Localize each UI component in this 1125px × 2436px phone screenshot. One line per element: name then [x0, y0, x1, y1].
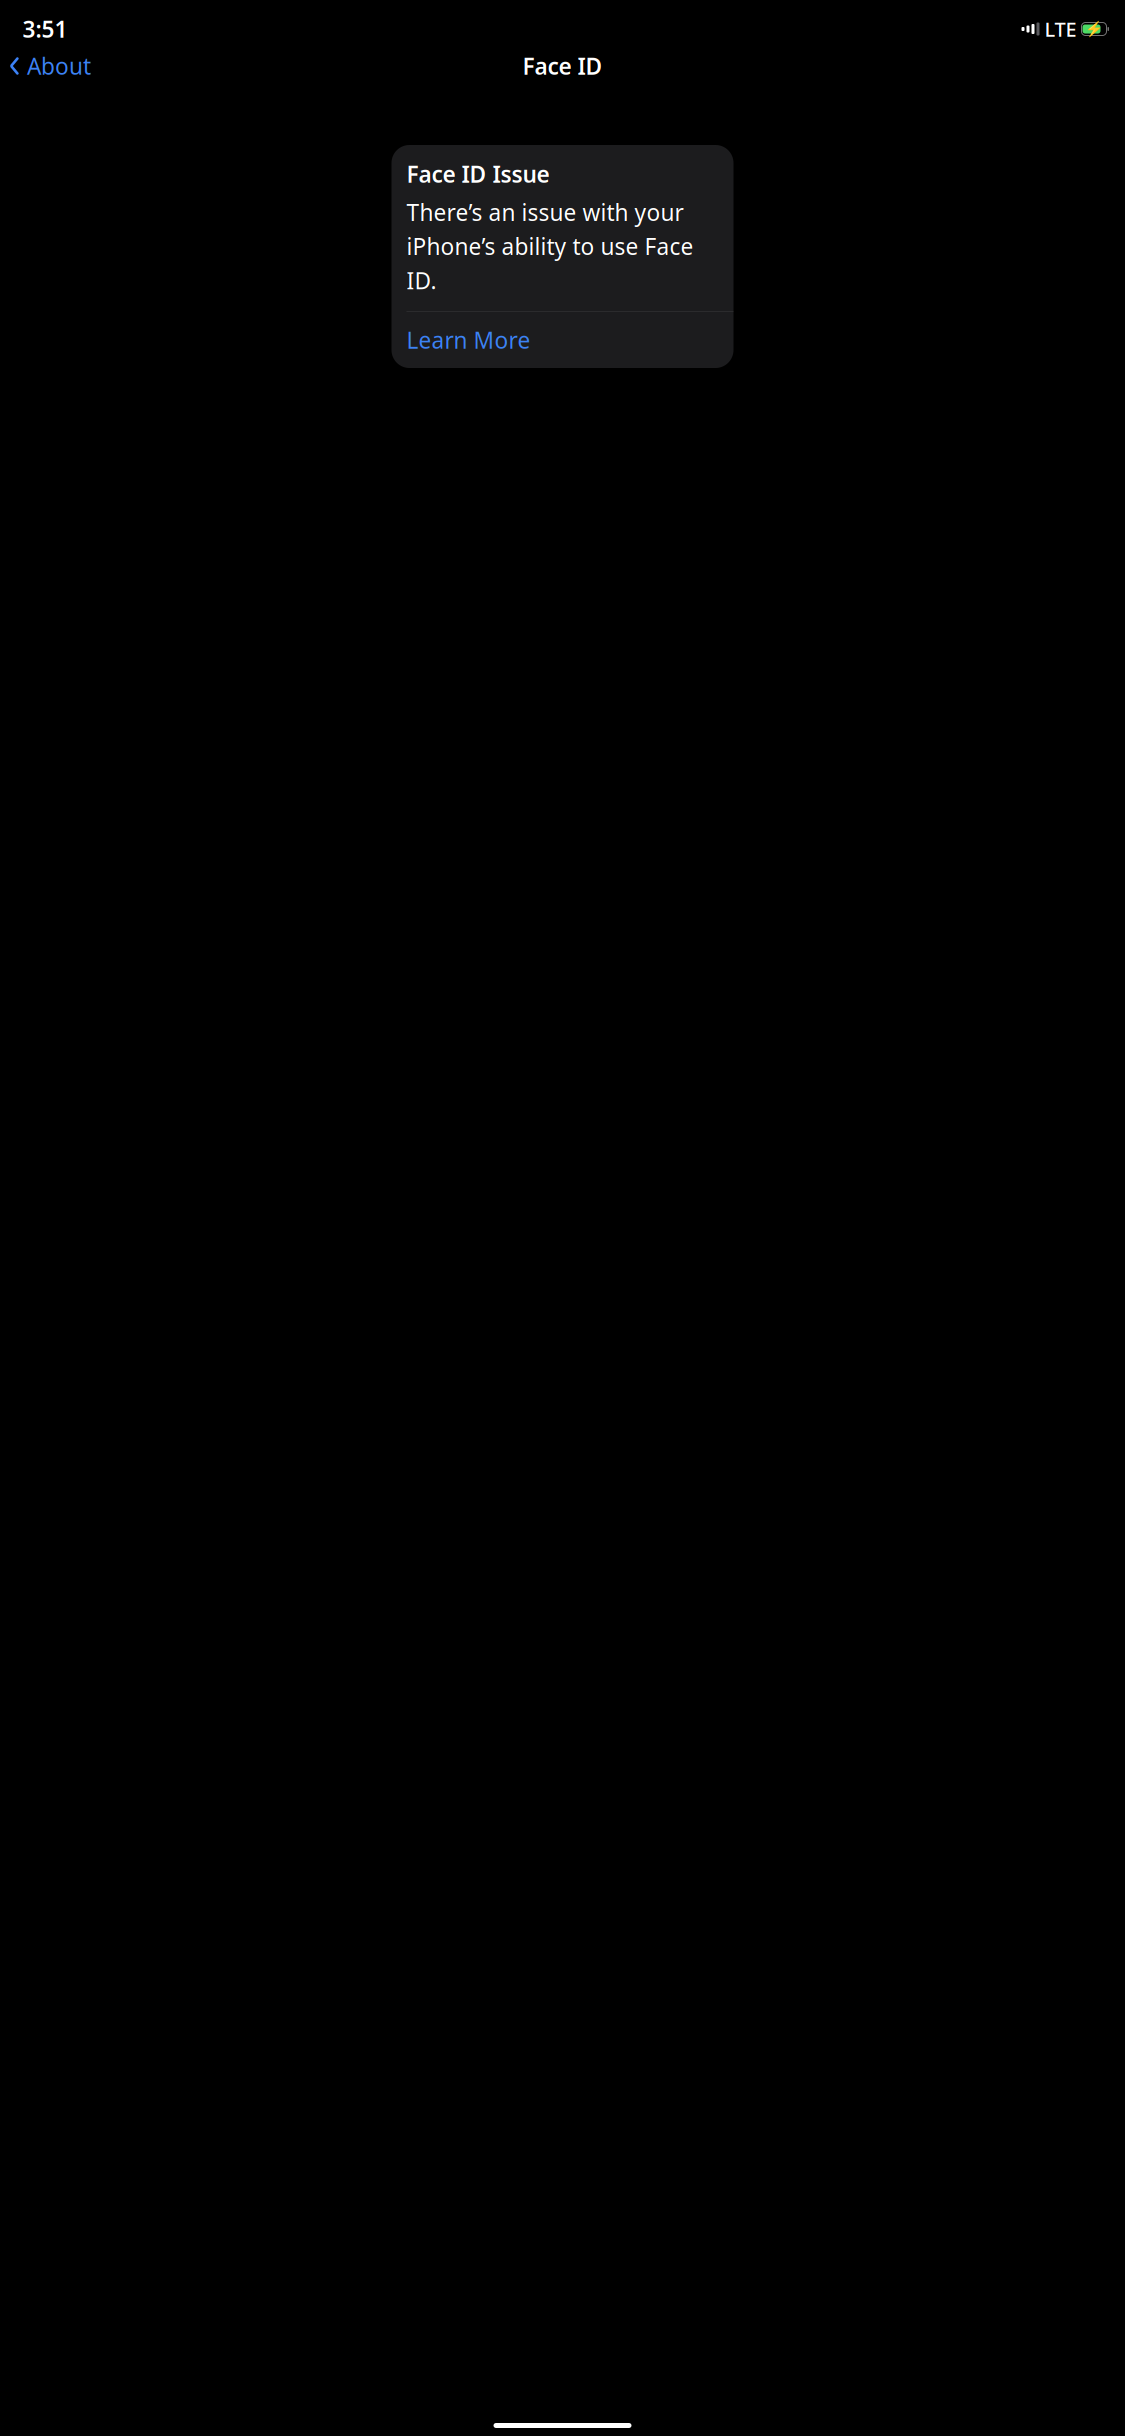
button[interactable]: About: [0, 45, 91, 87]
staticText: About: [27, 51, 91, 81]
button[interactable]: Learn More: [391, 312, 733, 368]
staticText: Face ID: [522, 51, 602, 81]
staticText: Face ID Issue: [406, 159, 549, 189]
staticText: ⚡: [1085, 21, 1103, 37]
staticText: Learn More: [406, 325, 530, 355]
staticText: 3:51: [22, 14, 67, 44]
staticText: LTE: [1044, 16, 1076, 42]
staticText: There’s an issue with your iPhone’s abil…: [406, 197, 693, 295]
